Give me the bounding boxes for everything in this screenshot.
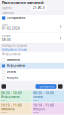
button[interactable]: Физика bbox=[0, 69, 64, 75]
staticText: История bbox=[6, 76, 18, 79]
staticText: Физика bbox=[6, 70, 15, 73]
button[interactable]: 21-ИС-3 bbox=[31, 5, 47, 11]
staticText: 08:30 bbox=[2, 38, 11, 42]
staticText: 08:30 - 10:00 bbox=[33, 91, 54, 95]
staticText: Физика bbox=[33, 95, 42, 99]
staticText: ауд. 118 bbox=[1, 111, 7, 113]
staticText: Группа bbox=[2, 6, 11, 10]
staticText: Применить bbox=[38, 85, 53, 88]
staticText: Математика bbox=[6, 58, 19, 61]
button[interactable]: 10:10 - 11:40 bbox=[32, 103, 64, 114]
button[interactable]: Математика bbox=[0, 57, 64, 63]
staticText: 01.02.2024 bbox=[2, 27, 20, 30]
staticText: Время bbox=[2, 34, 11, 38]
staticText: ауд. 301 bbox=[33, 99, 39, 101]
staticText: Выбрать из списка bbox=[2, 48, 26, 51]
button[interactable]: Понедельник bbox=[0, 15, 64, 21]
staticText: Расписание занятий bbox=[2, 0, 44, 5]
button[interactable]: Back bbox=[1, 84, 6, 89]
staticText: Занятия bbox=[2, 11, 14, 15]
button[interactable]: Время bbox=[0, 32, 64, 43]
staticText: Информатика bbox=[6, 64, 24, 67]
button[interactable]: Применить bbox=[35, 84, 56, 89]
staticText: Математика bbox=[1, 107, 14, 111]
staticText: Дата bbox=[2, 23, 7, 26]
button[interactable]: More bbox=[58, 84, 62, 89]
staticText: История bbox=[33, 107, 45, 111]
button[interactable]: 10:10 - 11:40 bbox=[0, 103, 32, 114]
staticText: Понедельник bbox=[7, 16, 25, 20]
staticText: ауд. 214 bbox=[1, 99, 7, 101]
button[interactable]: Дата bbox=[0, 21, 64, 32]
staticText: Информатика bbox=[2, 52, 20, 56]
staticText: Выберите предмет bbox=[2, 44, 27, 47]
staticText: ауд. 405 bbox=[33, 111, 39, 113]
button[interactable]: Информатика bbox=[0, 63, 64, 69]
staticText: 21-ИС-3 bbox=[33, 6, 45, 10]
button[interactable]: 08:30 - 10:00 bbox=[32, 90, 64, 102]
staticText: 08:30 - 10:00 bbox=[1, 91, 22, 95]
button[interactable]: История bbox=[0, 75, 64, 81]
button[interactable]: 08:30 - 10:00 bbox=[0, 90, 32, 102]
staticText: 10:10 - 11:40 bbox=[33, 104, 54, 107]
staticText: Информатика bbox=[1, 95, 19, 99]
staticText: 10:10 - 11:40 bbox=[1, 104, 22, 107]
